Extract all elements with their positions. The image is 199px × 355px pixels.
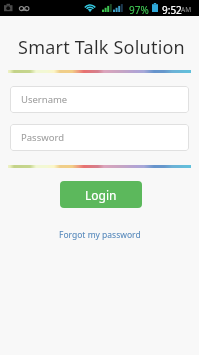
button[interactable]: Username <box>10 86 189 113</box>
staticText: 97% <box>129 3 149 17</box>
button[interactable]: Login <box>60 181 142 208</box>
staticText: Username <box>21 93 68 106</box>
staticText: Forgot my password <box>59 229 141 241</box>
button[interactable]: Forgot my password <box>55 227 145 243</box>
staticText: Password <box>21 131 64 144</box>
staticText: Smart Talk Solution <box>2 35 199 60</box>
button[interactable]: Password <box>10 124 189 151</box>
staticText: 9:52 <box>162 3 182 17</box>
staticText: Login <box>85 187 117 203</box>
staticText: AM <box>181 5 192 14</box>
